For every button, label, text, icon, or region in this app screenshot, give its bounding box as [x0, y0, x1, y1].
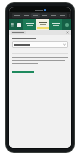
- button[interactable]: [12, 70, 34, 74]
- button[interactable]: [49, 19, 62, 30]
- button[interactable]: [11, 31, 26, 34]
- button[interactable]: [31, 13, 40, 18]
- button[interactable]: Menu: [9, 19, 23, 30]
- button[interactable]: [40, 13, 49, 18]
- button[interactable]: [49, 13, 58, 18]
- button[interactable]: [12, 13, 22, 18]
- button[interactable]: [23, 19, 36, 30]
- button[interactable]: Open dropdown: [12, 41, 68, 48]
- button[interactable]: Tab options: [67, 12, 71, 19]
- other: Open dropdown: [63, 43, 66, 46]
- button[interactable]: [22, 13, 31, 18]
- button[interactable]: Close: [66, 31, 69, 34]
- button[interactable]: [36, 19, 49, 30]
- button[interactable]: Account: [62, 19, 71, 30]
- button[interactable]: [58, 13, 67, 18]
